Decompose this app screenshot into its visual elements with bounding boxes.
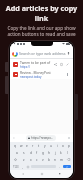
button[interactable]: Review - MoneyPost [10,69,73,79]
staticText: c [36,158,38,162]
staticText: newspost.today [20,75,42,79]
staticText: b [48,158,50,162]
button[interactable]: o [60,143,66,148]
staticText: Copy the link and our app show action bu… [3,25,80,37]
staticText: . [59,165,60,169]
staticText: y [44,144,46,148]
staticText: Add articles by copy link [3,3,80,23]
staticText: f [36,151,38,155]
button[interactable]: e [24,143,30,148]
staticText: m [60,158,63,162]
button[interactable]: i [54,143,60,148]
button[interactable]: Copy [58,60,64,69]
button[interactable]: Recents [55,170,65,178]
button[interactable]: . [57,164,62,169]
button[interactable]: Back [18,170,28,178]
staticText: Review - MoneyPost [20,70,51,74]
staticText: Search or type web address [19,51,66,56]
button[interactable]: Back [12,136,16,140]
button[interactable]: w [18,143,24,148]
button[interactable]: p [66,143,72,148]
button[interactable]: Share [52,60,58,69]
staticText: q [14,144,16,148]
button[interactable]: g [40,150,46,155]
staticText: z [23,158,25,162]
button[interactable]: Emoji [25,164,30,169]
staticText: a [16,151,18,155]
staticText: , [22,165,23,169]
button[interactable]: Voice search [66,51,70,56]
button[interactable]: Home [37,170,47,178]
staticText: w [20,144,23,148]
button[interactable]: h [46,150,52,155]
button[interactable]: https://newspo... [26,135,56,141]
button[interactable]: Edit [64,60,70,69]
button[interactable]: j [52,150,58,155]
button[interactable]: Shift [11,157,20,162]
button[interactable]: ?123 [11,164,20,169]
staticText: d [30,151,32,155]
button[interactable]: b [46,157,52,162]
staticText: v [42,158,44,162]
staticText: x [30,158,32,162]
button[interactable]: Settings [67,136,71,140]
button[interactable]: x [27,157,34,162]
staticText: https://newspost.today/nothi... [20,65,51,69]
staticText: h [48,151,50,155]
button[interactable]: Backspace [64,157,72,162]
staticText: i [57,144,58,148]
button[interactable]: s [20,150,27,155]
button[interactable]: v [40,157,46,162]
button[interactable]: r [30,143,36,148]
button[interactable]: More [65,72,70,77]
button[interactable]: y [42,143,48,148]
button[interactable]: d [27,150,34,155]
staticText: j [55,151,56,155]
staticText: o [62,144,64,148]
button[interactable]: l [64,150,70,155]
staticText: Tween to be part of nothing... [20,60,51,64]
button[interactable]: q [11,143,18,148]
staticText: p [68,144,70,148]
button[interactable]: f [34,150,40,155]
button[interactable]: z [20,157,27,162]
staticText: https://newspo... [31,136,54,140]
staticText: t [38,144,40,148]
button[interactable]: c [34,157,40,162]
staticText: ?123 [13,165,19,169]
button[interactable]: n [52,157,58,162]
staticText: k [60,151,62,155]
staticText: g [42,151,44,155]
button[interactable]: Enter [63,165,71,168]
staticText: r [32,144,34,148]
button[interactable]: Tween to be part of nothing... [10,59,73,69]
staticText: e [26,144,28,148]
staticText: s [23,151,25,155]
button[interactable]: , [20,164,25,169]
staticText: u [50,144,52,148]
button[interactable]: a [13,150,20,155]
button[interactable]: u [48,143,54,148]
staticText: l [67,151,68,155]
button[interactable]: m [58,157,64,162]
button[interactable]: Search or type web address [13,50,70,57]
button[interactable]: k [58,150,64,155]
button[interactable]: t [36,143,42,148]
staticText: n [54,158,56,162]
